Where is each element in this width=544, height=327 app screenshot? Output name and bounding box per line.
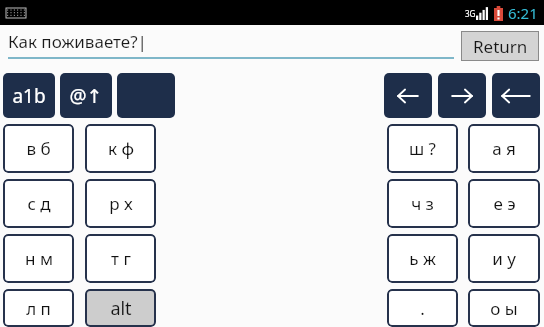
button[interactable]: к ф bbox=[85, 124, 156, 173]
staticText: в б bbox=[26, 137, 51, 160]
button[interactable]: е э bbox=[468, 179, 540, 228]
button[interactable]: Space bbox=[117, 73, 175, 118]
button[interactable]: Move cursor left bbox=[384, 73, 432, 118]
button[interactable]: a1b bbox=[3, 73, 55, 118]
button[interactable]: ч з bbox=[387, 179, 458, 228]
staticText: л п bbox=[26, 297, 51, 320]
button[interactable]: р х bbox=[85, 179, 156, 228]
staticText: ш ? bbox=[409, 137, 436, 160]
staticText: Как поживаете?| bbox=[8, 30, 147, 53]
button[interactable]: н м bbox=[3, 234, 74, 283]
button[interactable]: а я bbox=[468, 124, 540, 173]
button[interactable]: л п bbox=[3, 289, 74, 327]
staticText: a1b bbox=[12, 83, 46, 109]
button[interactable]: alt bbox=[85, 289, 156, 327]
button[interactable]: ь ж bbox=[387, 234, 458, 283]
button[interactable]: . bbox=[387, 289, 458, 327]
button[interactable]: и у bbox=[468, 234, 540, 283]
button[interactable]: Move cursor right bbox=[438, 73, 486, 118]
staticText: ч з bbox=[411, 192, 434, 215]
button[interactable]: Return bbox=[461, 31, 539, 61]
staticText: о ы bbox=[490, 297, 518, 320]
staticText: к ф bbox=[108, 137, 134, 160]
button[interactable]: с д bbox=[3, 179, 74, 228]
staticText: @↑ bbox=[69, 83, 103, 109]
staticText: 3G bbox=[465, 8, 476, 19]
button[interactable]: т г bbox=[85, 234, 156, 283]
staticText: и у bbox=[492, 247, 516, 270]
button[interactable]: ш ? bbox=[387, 124, 458, 173]
button[interactable]: о ы bbox=[468, 289, 540, 327]
staticText: Return bbox=[473, 35, 528, 58]
staticText: 6:21 bbox=[508, 3, 538, 23]
button[interactable]: Backspace bbox=[492, 73, 540, 118]
staticText: р х bbox=[109, 192, 133, 215]
staticText: с д bbox=[27, 192, 51, 215]
staticText: т г bbox=[111, 247, 131, 270]
staticText: alt bbox=[110, 296, 132, 321]
staticText: н м bbox=[25, 247, 53, 270]
staticText: а я bbox=[492, 137, 516, 160]
button[interactable]: в б bbox=[3, 124, 74, 173]
button[interactable]: @↑ bbox=[60, 73, 112, 118]
staticText: ь ж bbox=[409, 247, 436, 270]
staticText: . bbox=[420, 297, 425, 320]
staticText: е э bbox=[493, 192, 516, 215]
